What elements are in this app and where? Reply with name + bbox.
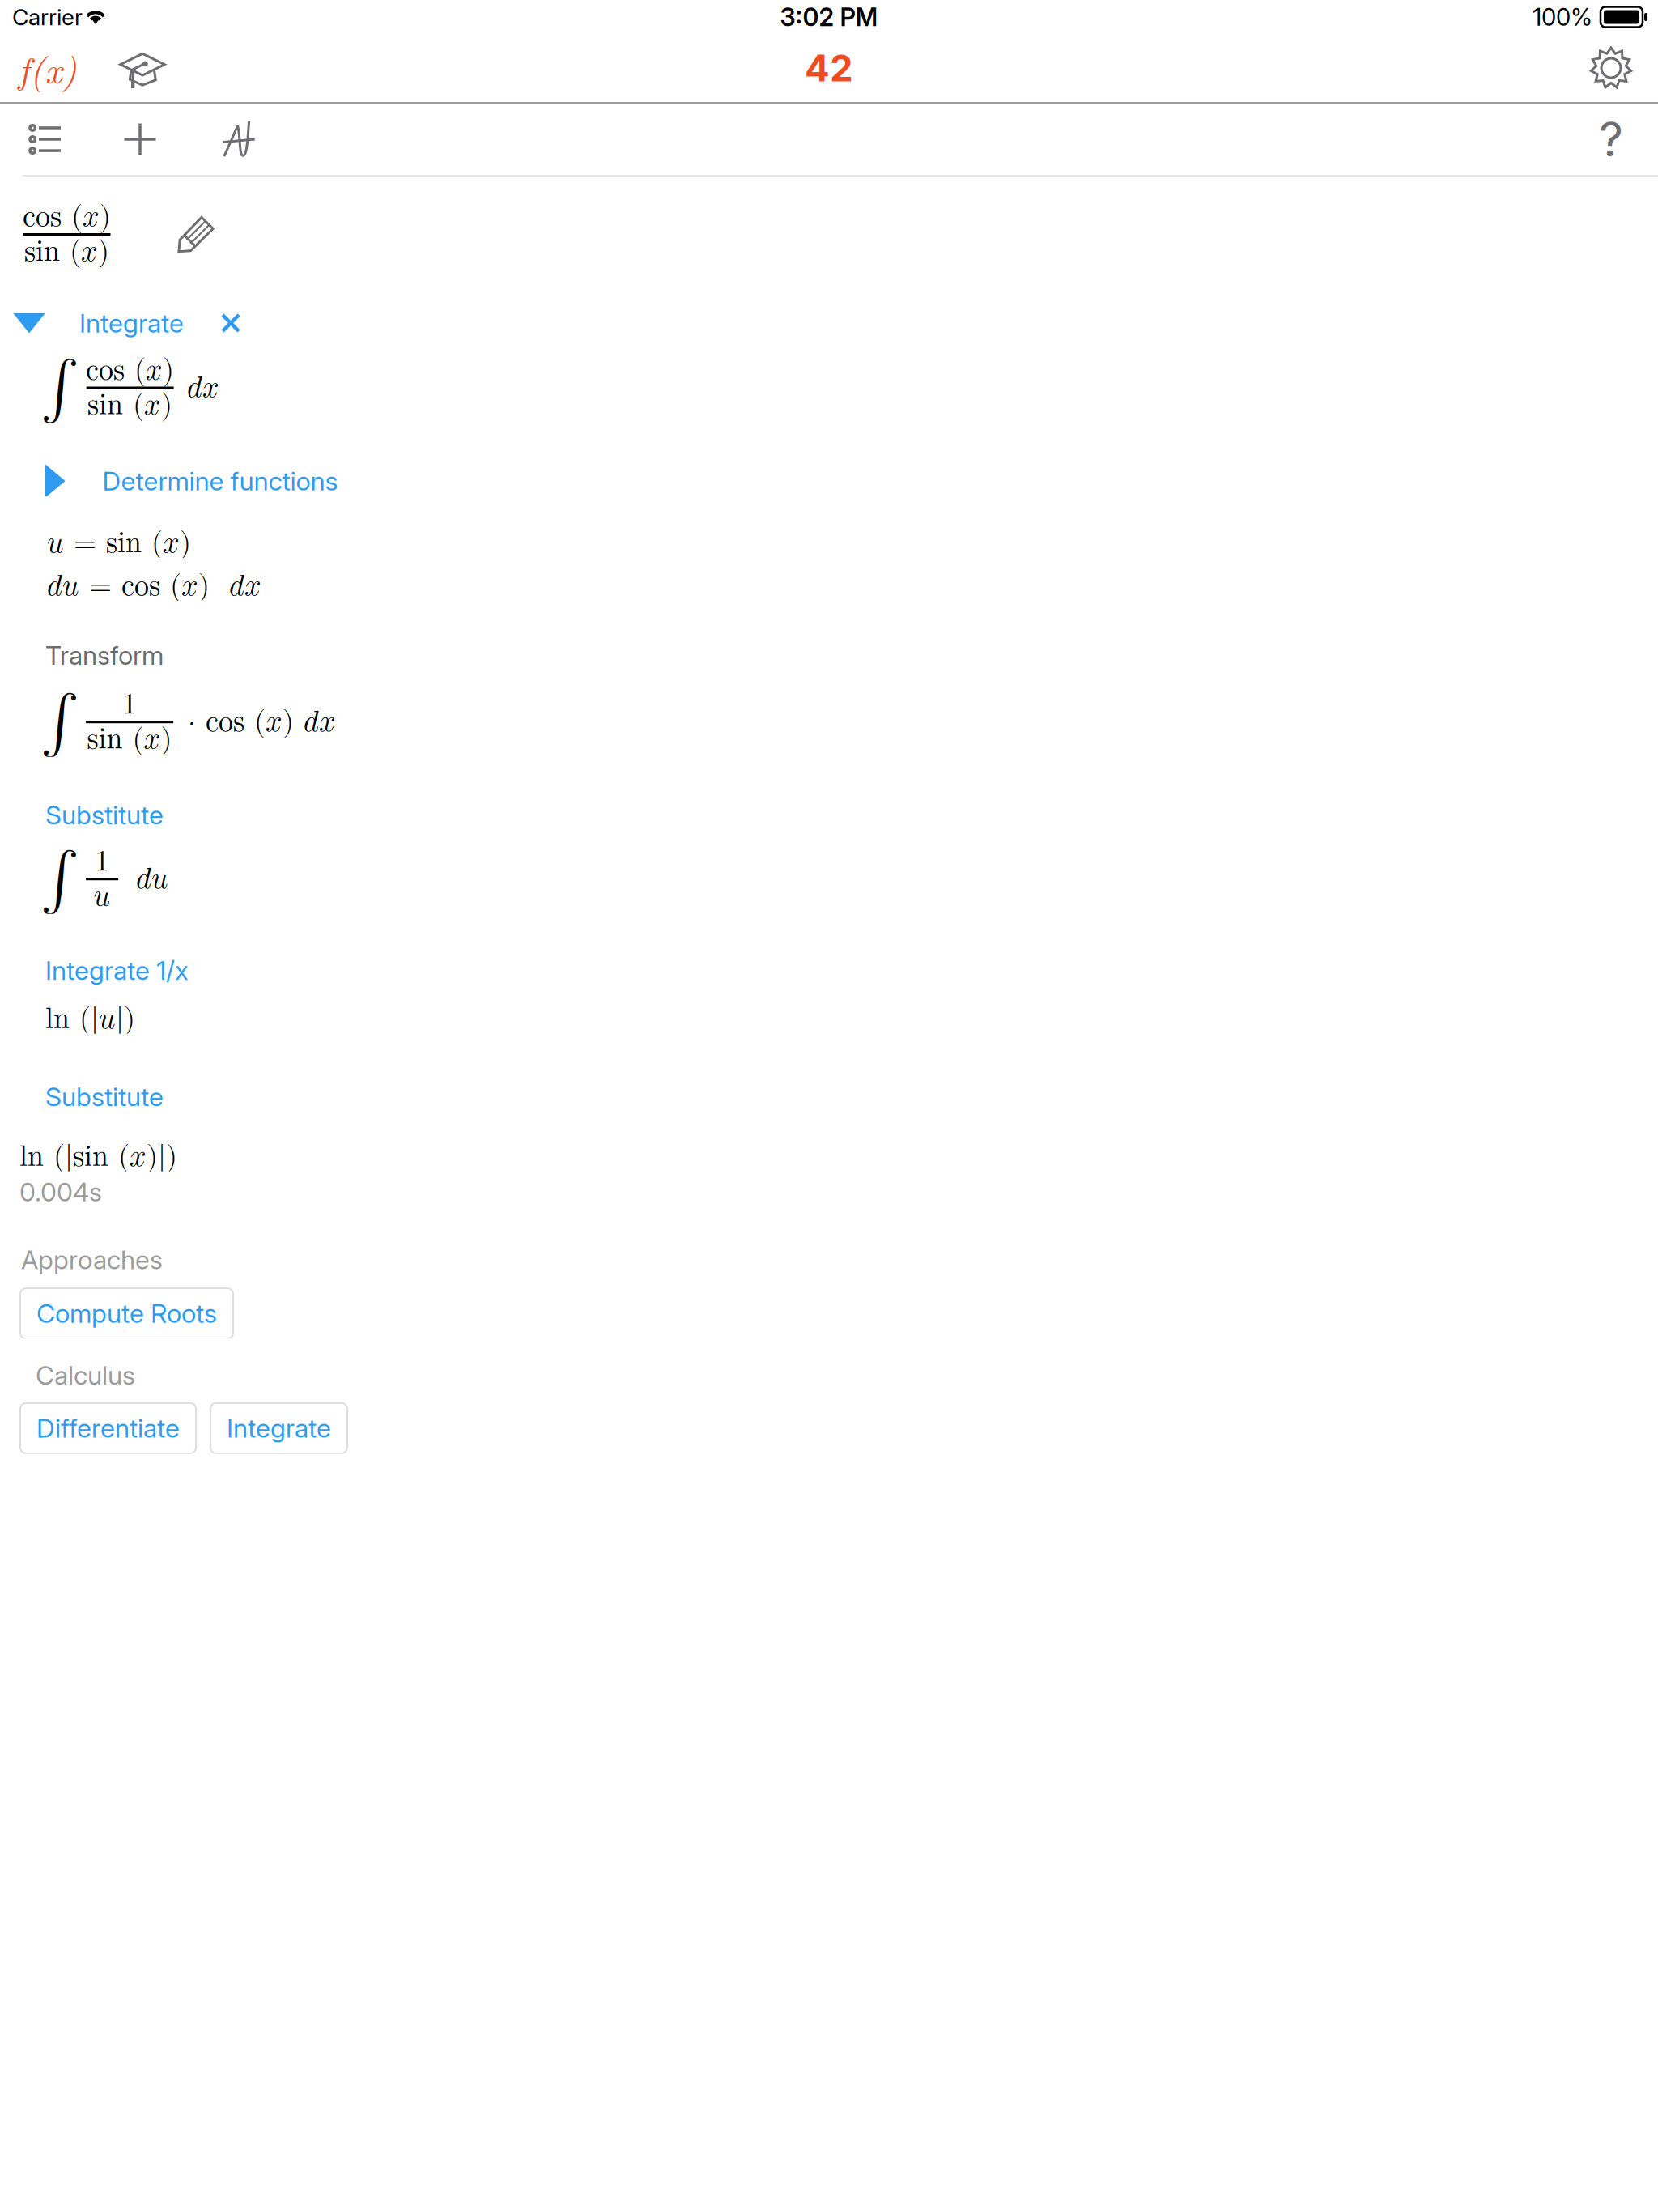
button[interactable]: Edit expression	[111, 201, 281, 268]
staticText: · cos (𝑥) 𝑑𝑥	[188, 707, 336, 737]
staticText: Calculus	[36, 1360, 135, 1391]
button[interactable]: Integrate 1/x	[0, 955, 1658, 986]
staticText: Integrate	[79, 307, 184, 339]
staticText: cos (𝑥)	[23, 202, 111, 232]
button[interactable]: Substitute	[0, 1081, 1658, 1112]
staticText: ∫	[41, 693, 79, 751]
staticText: ln (|𝑢|)	[45, 1005, 135, 1034]
button[interactable]: Handwriting input	[189, 104, 293, 175]
button[interactable]: New expression	[91, 104, 189, 175]
button[interactable]: Settings	[1579, 34, 1643, 102]
staticText: 1	[95, 847, 109, 876]
button[interactable]: Differentiate	[20, 1403, 196, 1453]
staticText: Substitute	[45, 1081, 164, 1113]
button[interactable]: Determine functions	[0, 466, 1658, 496]
staticText: ln (|sin (𝑥)|)	[19, 1142, 177, 1171]
staticText: f(x)	[18, 42, 77, 94]
staticText: Integrate 1/x	[45, 955, 189, 986]
staticText: 𝑢	[94, 882, 111, 911]
staticText: sin (𝑥)	[24, 237, 109, 266]
staticText: 𝑑𝑥	[187, 373, 219, 402]
staticText: Compute Roots	[36, 1298, 217, 1329]
button[interactable]: Integrate	[210, 1403, 347, 1453]
staticText: Substitute	[45, 799, 164, 831]
staticText: sin (𝑥)	[87, 725, 172, 754]
staticText: 1	[122, 690, 137, 719]
staticText: 0.004s	[19, 1176, 102, 1208]
staticText: 3:02 PM	[780, 2, 878, 32]
staticText: 𝑑𝑢	[136, 864, 168, 894]
staticText: Differentiate	[36, 1412, 180, 1444]
button[interactable]: Tutorials	[96, 34, 189, 102]
staticText: ∫	[41, 359, 79, 417]
button[interactable]: Substitute	[0, 800, 1658, 830]
staticText: 𝑢 = sin (𝑥)	[47, 529, 191, 558]
staticText: Approaches	[21, 1244, 163, 1275]
button[interactable]: Functions	[0, 34, 96, 102]
button[interactable]: History	[0, 104, 91, 175]
button[interactable]: Compute Roots	[20, 1288, 233, 1339]
staticText: Transform	[45, 640, 164, 671]
staticText: sin (𝑥)	[88, 391, 173, 420]
staticText: 𝑑𝑢 = cos (𝑥) 𝑑𝑥	[47, 572, 261, 601]
staticText: ∫	[41, 850, 79, 908]
staticText: 42	[805, 46, 853, 90]
staticText: Carrier	[12, 3, 83, 31]
staticText: Determine functions	[102, 465, 338, 497]
staticText: 100%	[1533, 3, 1592, 31]
button[interactable]: Integrate	[0, 308, 1658, 338]
staticText: cos (𝑥)	[86, 356, 174, 385]
staticText: Integrate	[227, 1412, 331, 1444]
staticText: ?	[1599, 111, 1623, 168]
button[interactable]: Help	[1574, 104, 1648, 175]
